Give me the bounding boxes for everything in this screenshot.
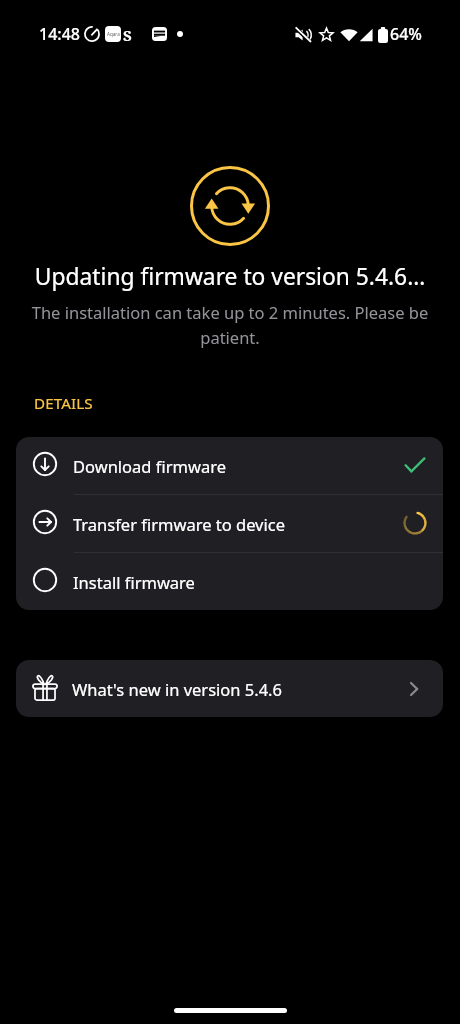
- button[interactable]: What's new in version 5.4.6: [16, 660, 443, 717]
- staticText: S: [123, 25, 132, 45]
- staticText: Aqara: [107, 31, 120, 37]
- staticText: 64%: [390, 23, 422, 45]
- staticText: Updating firmware to version 5.4.6…: [12, 261, 448, 292]
- staticText: Download firmware: [73, 455, 226, 477]
- button[interactable]: Install firmware: [16, 553, 443, 610]
- staticText: 14:48: [39, 23, 80, 45]
- staticText: What's new in version 5.4.6: [72, 678, 282, 700]
- button[interactable]: Transfer firmware to device: [16, 495, 443, 552]
- staticText: DETAILS: [34, 393, 93, 414]
- staticText: The installation can take up to 2 minute…: [30, 301, 430, 348]
- staticText: Transfer firmware to device: [73, 513, 285, 535]
- staticText: Install firmware: [73, 571, 195, 593]
- button[interactable]: Download firmware: [16, 437, 443, 494]
